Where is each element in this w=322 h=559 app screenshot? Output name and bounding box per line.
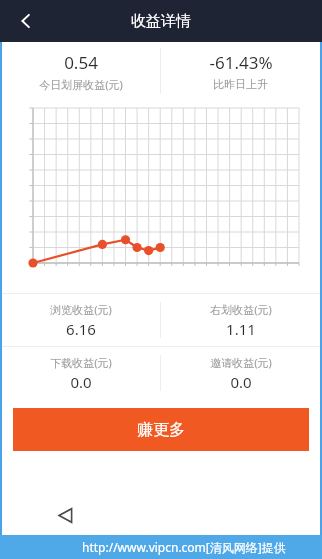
- staticText: 右划收益(元): [210, 302, 272, 317]
- staticText: 0.0: [70, 372, 92, 392]
- staticText: http://www.vipcn.com[清风网络]提供: [82, 539, 286, 555]
- button[interactable]: 0.54: [2, 42, 160, 100]
- button[interactable]: 赚更多: [13, 408, 309, 451]
- staticText: 比昨日上升: [213, 77, 268, 91]
- staticText: 今日划屏收益(元): [39, 77, 123, 92]
- staticText: 1.11: [226, 319, 256, 339]
- staticText: -61.43%: [209, 51, 273, 74]
- button[interactable]: Back: [6, 1, 46, 41]
- button[interactable]: 邀请收益(元): [161, 347, 320, 399]
- button[interactable]: -61.43%: [161, 42, 320, 100]
- staticText: 赚更多: [137, 420, 185, 440]
- button[interactable]: Back: [48, 498, 82, 532]
- staticText: 0.0: [230, 372, 252, 392]
- button[interactable]: 浏览收益(元): [2, 294, 160, 346]
- button[interactable]: 下载收益(元): [2, 347, 160, 399]
- staticText: 收益详情: [131, 12, 191, 31]
- staticText: 邀请收益(元): [210, 355, 272, 370]
- staticText: 0.54: [64, 51, 98, 74]
- staticText: 浏览收益(元): [50, 302, 112, 317]
- staticText: 下载收益(元): [50, 355, 112, 370]
- button[interactable]: 右划收益(元): [161, 294, 320, 346]
- staticText: 6.16: [66, 319, 96, 339]
